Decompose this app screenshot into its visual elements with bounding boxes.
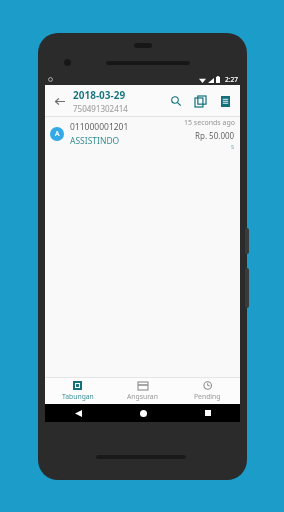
button[interactable]: Recents (198, 404, 218, 422)
button[interactable]: Back (45, 87, 73, 115)
staticText: Angsuran (127, 392, 158, 401)
staticText: ASSISTINDO (70, 135, 120, 147)
staticText: Tabungan (62, 392, 94, 401)
button[interactable]: Back (68, 404, 88, 422)
button[interactable]: Pending (175, 378, 240, 404)
staticText: 750491302414 (73, 103, 128, 114)
button[interactable]: Home (133, 404, 153, 422)
staticText: A (55, 129, 60, 139)
button[interactable]: Angsuran (110, 378, 175, 404)
staticText: 2018-03-29 (73, 88, 126, 102)
staticText: 2:27 (225, 75, 238, 84)
staticText: S (231, 143, 235, 150)
button[interactable]: Tabungan (45, 378, 110, 404)
staticText: 15 seconds ago (184, 118, 235, 128)
button[interactable]: Copy (188, 89, 212, 113)
staticText: Rp. 50.000 (195, 130, 235, 141)
button[interactable]: Document (212, 88, 238, 114)
staticText: Pending (194, 392, 221, 401)
button[interactable]: A (45, 117, 240, 151)
staticText: 011000001201 (70, 121, 129, 133)
button[interactable]: Search (164, 89, 188, 113)
